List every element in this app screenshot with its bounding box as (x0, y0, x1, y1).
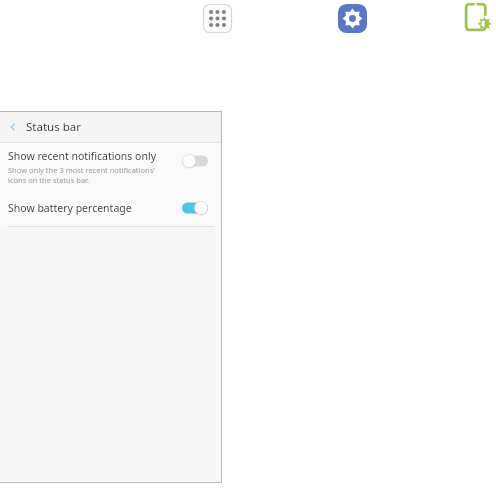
staticText: Show battery percentage (8, 201, 132, 215)
button[interactable]: Show recent notifications only (0, 143, 222, 189)
staticText: Status bar (26, 119, 81, 135)
staticText: Show recent notifications only (8, 149, 156, 163)
button[interactable]: Settings (336, 2, 369, 35)
button[interactable]: Show recent notifications only toggle (182, 154, 208, 168)
button[interactable]: Show battery percentage (0, 189, 222, 226)
staticText: icons on the status bar. (8, 175, 90, 185)
button[interactable]: Status bar (0, 111, 222, 142)
staticText: Show only the 3 most recent notification… (8, 165, 155, 175)
button[interactable]: Apps (200, 1, 235, 36)
button[interactable]: Display settings (461, 2, 493, 34)
button[interactable]: Show battery percentage toggle (182, 201, 208, 215)
